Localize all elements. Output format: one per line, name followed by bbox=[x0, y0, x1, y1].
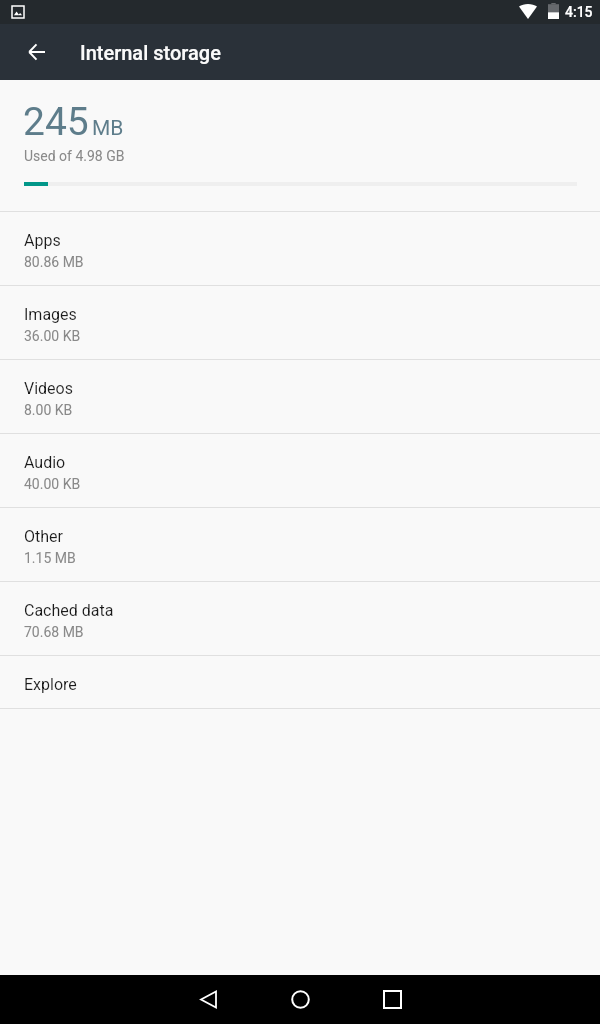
staticText: 1.15 MB bbox=[24, 550, 76, 566]
staticText: Apps bbox=[24, 231, 61, 250]
staticText: Audio bbox=[24, 453, 66, 472]
button[interactable]: Cached data bbox=[0, 582, 600, 656]
staticText: MB bbox=[92, 116, 124, 141]
button[interactable]: Audio bbox=[0, 434, 600, 508]
staticText: Cached data bbox=[24, 601, 114, 620]
staticText: 4:15 bbox=[565, 4, 593, 20]
staticText: Explore bbox=[24, 675, 77, 694]
button[interactable]: Apps bbox=[0, 212, 600, 286]
button[interactable]: Images bbox=[0, 286, 600, 360]
staticText: 8.00 KB bbox=[24, 402, 73, 418]
staticText: Images bbox=[24, 305, 77, 324]
staticText: 80.86 MB bbox=[24, 254, 84, 270]
staticText: 70.68 MB bbox=[24, 624, 84, 640]
staticText: Internal storage bbox=[80, 41, 221, 64]
staticText: 40.00 KB bbox=[24, 476, 81, 492]
button[interactable]: Videos bbox=[0, 360, 600, 434]
staticText: Other bbox=[24, 527, 63, 546]
staticText: Videos bbox=[24, 379, 73, 398]
button[interactable]: Explore bbox=[0, 656, 600, 709]
button[interactable]: Back bbox=[162, 975, 254, 1024]
button[interactable]: Other bbox=[0, 508, 600, 582]
staticText: Used of 4.98 GB bbox=[24, 148, 125, 164]
button[interactable]: Home bbox=[254, 975, 346, 1024]
staticText: 36.00 KB bbox=[24, 328, 81, 344]
button[interactable]: Recent apps bbox=[346, 975, 438, 1024]
button[interactable]: Navigate up bbox=[8, 24, 64, 80]
staticText: 245 bbox=[23, 99, 89, 145]
